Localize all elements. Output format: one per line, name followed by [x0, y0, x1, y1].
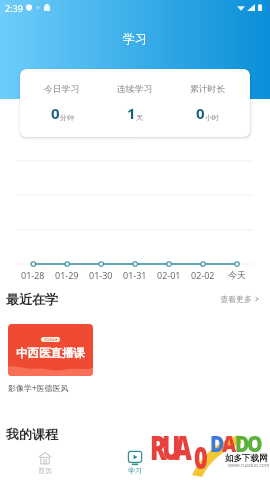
staticText: 我的课程 [6, 426, 58, 442]
staticText: D [235, 427, 249, 458]
staticText: D [210, 427, 224, 458]
staticText: www.ruaduo.com [228, 462, 270, 469]
staticText: 今天 [228, 269, 246, 280]
staticText: 01-30 [89, 269, 113, 281]
staticText: 2:39 [5, 2, 23, 14]
staticText: 01-29 [55, 269, 79, 281]
staticText: 学习 [123, 31, 147, 46]
button[interactable]: 首页 [0, 442, 90, 480]
staticText: 小时 [205, 113, 219, 122]
staticText: 2023春季 [44, 338, 58, 342]
staticText: R [150, 424, 167, 470]
button[interactable]: 学习 [90, 442, 180, 480]
staticText: A [222, 427, 236, 458]
staticText: 连续学习 [117, 84, 153, 95]
staticText: 如多下载网 [225, 453, 268, 464]
staticText: 01-31 [123, 269, 147, 281]
button[interactable]: 2023春季 [8, 324, 93, 393]
staticText: 累计时长 [190, 84, 226, 95]
staticText: 查看更多 [220, 294, 252, 304]
staticText: 首页 [38, 466, 52, 475]
staticText: O [247, 427, 263, 458]
staticText: 1 [127, 103, 136, 123]
staticText: 天 [136, 113, 143, 122]
staticText: 0 [194, 437, 208, 478]
staticText: 02-01 [157, 269, 181, 281]
staticText: A [174, 424, 192, 470]
staticText: 01-28 [21, 269, 45, 281]
staticText: 中西医直播课 [16, 346, 85, 360]
staticText: 学习 [128, 466, 142, 475]
staticText: 今日学习 [44, 84, 80, 95]
staticText: 我的 [218, 466, 232, 475]
staticText: 0 [51, 103, 60, 123]
button[interactable]: 查看更多 [222, 291, 270, 307]
staticText: 影像学+医德医风 [8, 382, 69, 393]
staticText: 0 [196, 103, 205, 123]
staticText: 02-02 [191, 269, 215, 281]
staticText: 最近在学 [6, 291, 58, 307]
staticText: U [162, 424, 181, 470]
button[interactable]: 我的 [180, 442, 270, 480]
staticText: 分钟 [60, 113, 74, 122]
